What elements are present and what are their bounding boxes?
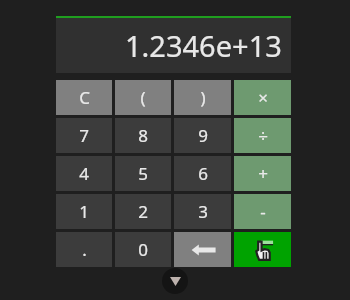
staticText: C bbox=[79, 86, 90, 109]
button[interactable]: 4 bbox=[56, 156, 112, 191]
button[interactable]: Enter bbox=[234, 232, 291, 267]
staticText: 2 bbox=[138, 200, 148, 223]
button[interactable]: . bbox=[56, 232, 112, 267]
staticText: . bbox=[82, 238, 87, 261]
staticText: 7 bbox=[79, 124, 89, 147]
button[interactable]: Collapse keypad bbox=[162, 268, 188, 294]
button[interactable]: + bbox=[234, 156, 291, 191]
button[interactable]: 8 bbox=[115, 118, 171, 153]
staticText: 0 bbox=[138, 238, 148, 261]
staticText: 9 bbox=[198, 124, 208, 147]
button[interactable]: ( bbox=[115, 80, 171, 115]
button[interactable]: 9 bbox=[174, 118, 231, 153]
button[interactable]: 1 bbox=[56, 194, 112, 229]
button[interactable]: ÷ bbox=[234, 118, 291, 153]
staticText: × bbox=[258, 86, 268, 109]
button[interactable]: ) bbox=[174, 80, 231, 115]
staticText: 3 bbox=[198, 200, 208, 223]
staticText: 5 bbox=[138, 162, 148, 185]
button[interactable]: 6 bbox=[174, 156, 231, 191]
staticText: 8 bbox=[138, 124, 148, 147]
button[interactable]: 7 bbox=[56, 118, 112, 153]
staticText: 6 bbox=[198, 162, 208, 185]
button[interactable]: 2 bbox=[115, 194, 171, 229]
staticText: 1.2346e+13 bbox=[125, 26, 282, 65]
button[interactable]: × bbox=[234, 80, 291, 115]
staticText: ) bbox=[200, 86, 206, 109]
staticText: - bbox=[260, 200, 266, 223]
staticText: ÷ bbox=[258, 124, 268, 147]
staticText: + bbox=[258, 162, 268, 185]
button[interactable]: 0 bbox=[115, 232, 171, 267]
button[interactable]: 5 bbox=[115, 156, 171, 191]
staticText: 1 bbox=[79, 200, 89, 223]
button[interactable]: - bbox=[234, 194, 291, 229]
button[interactable]: C bbox=[56, 80, 112, 115]
staticText: 4 bbox=[79, 162, 89, 185]
staticText: ( bbox=[140, 86, 146, 109]
button[interactable]: 3 bbox=[174, 194, 231, 229]
button[interactable]: Backspace bbox=[174, 232, 231, 267]
